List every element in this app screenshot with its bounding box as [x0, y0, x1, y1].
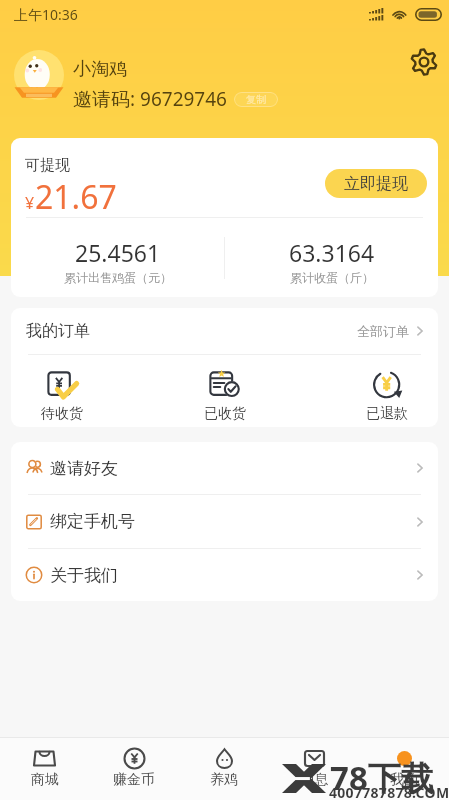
staticText: 商城 — [31, 771, 59, 789]
staticText: 78下载 — [330, 755, 434, 800]
staticText: 我的订单 — [26, 321, 90, 341]
button[interactable]: 商城 — [0, 738, 89, 789]
staticText: 小淘鸡 — [73, 58, 127, 81]
staticText: 养鸡 — [210, 771, 238, 789]
staticText: 上午10:36 — [14, 5, 78, 24]
staticText: 累计出售鸡蛋（元） — [64, 270, 172, 285]
staticText: 已退款 — [366, 405, 408, 423]
button[interactable]: 复制 — [234, 92, 278, 107]
staticText: 21.67 — [35, 175, 117, 217]
button[interactable]: 已退款 — [366, 355, 408, 423]
staticText: 可提现 — [25, 156, 70, 175]
staticText: 邀请码: 96729746 — [73, 86, 227, 112]
staticText: 全部订单 — [357, 323, 409, 339]
staticText: 关于我们 — [50, 565, 118, 586]
button[interactable]: 我的 — [359, 738, 449, 789]
button[interactable]: 全部订单 — [357, 323, 427, 339]
staticText: 63.3164 — [289, 237, 375, 268]
button[interactable]: 消息 — [269, 738, 359, 789]
staticText: 已收货 — [204, 405, 246, 423]
staticText: 累计收蛋（斤） — [290, 270, 374, 285]
button[interactable]: 赚金币 — [89, 738, 179, 789]
button[interactable]: 已收货 — [204, 355, 246, 423]
button[interactable]: 养鸡 — [179, 738, 269, 789]
button[interactable]: Settings — [402, 40, 446, 84]
button[interactable]: 待收货 — [41, 355, 83, 423]
staticText: 待收货 — [41, 405, 83, 423]
staticText: 复制 — [246, 93, 266, 106]
staticText: ¥ — [25, 192, 35, 214]
staticText: 绑定手机号 — [50, 511, 135, 532]
staticText: 消息 — [300, 771, 328, 789]
button[interactable]: 立即提现 — [325, 169, 427, 198]
staticText: 立即提现 — [344, 174, 408, 194]
button[interactable]: 邀请好友 — [11, 442, 438, 494]
staticText: 我的 — [390, 771, 418, 789]
button[interactable]: 绑定手机号 — [11, 495, 438, 548]
staticText: 4007787878.COM — [329, 783, 449, 800]
button[interactable]: 关于我们 — [11, 549, 438, 601]
staticText: 邀请好友 — [50, 458, 118, 479]
staticText: 25.4561 — [75, 237, 161, 268]
staticText: 赚金币 — [113, 771, 155, 789]
